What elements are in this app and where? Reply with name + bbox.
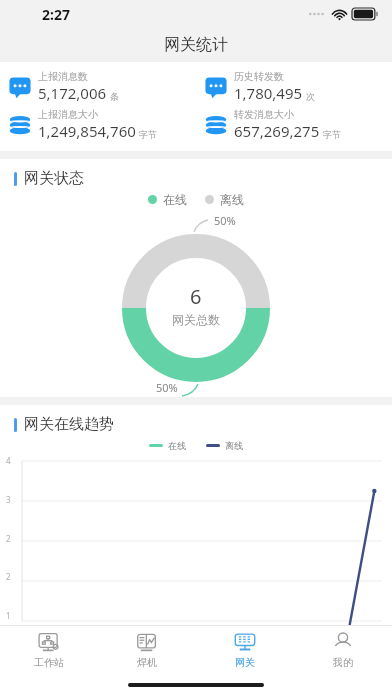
staticText: 在线 [168,440,186,451]
staticText: 50% [156,380,178,395]
staticText: 657,269,275 [234,121,320,141]
staticText: 3 [6,494,11,505]
staticText: 工作站 [34,656,64,669]
staticText: 上报消息数 [38,70,88,83]
staticText: 字节 [323,129,341,140]
button[interactable]: 网关 [196,626,294,674]
staticText: 1 [6,610,11,621]
staticText: 网关在线趋势 [24,415,114,434]
staticText: 离线 [225,440,243,451]
staticText: 在线 [163,192,187,207]
staticText: 转发消息大小 [234,108,294,121]
staticText: 历史转发数 [234,70,284,83]
staticText: 焊机 [137,656,157,669]
staticText: 网关统计 [164,35,228,55]
staticText: 字节 [139,129,157,140]
staticText: 5,172,006 [38,83,107,103]
staticText: 次 [306,91,315,102]
button[interactable]: 工作站 [0,626,98,674]
staticText: 2 [6,571,11,582]
staticText: 网关总数 [172,312,220,327]
staticText: 我的 [333,656,353,669]
staticText: 6 [190,283,202,310]
staticText: 4 [6,455,11,466]
staticText: 1,780,495 [234,83,303,103]
button[interactable]: 焊机 [98,626,196,674]
staticText: 上报消息大小 [38,108,98,121]
staticText: 网关 [235,656,255,669]
button[interactable]: 我的 [294,626,392,674]
staticText: 网关状态 [24,169,84,188]
staticText: 2:27 [42,5,70,24]
staticText: 50% [214,213,236,228]
staticText: 2 [6,533,11,544]
staticText: 1,249,854,760 [38,121,136,141]
staticText: 离线 [220,192,244,207]
staticText: 条 [110,91,119,102]
